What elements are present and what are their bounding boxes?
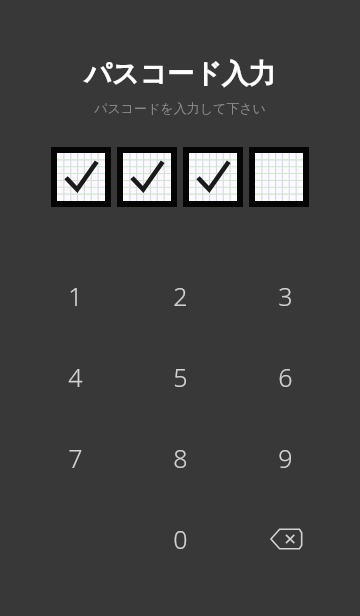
button[interactable]: 9 — [233, 417, 338, 498]
button[interactable]: 3 — [233, 255, 338, 336]
button[interactable]: 6 — [233, 336, 338, 417]
staticText: 5 — [173, 360, 188, 394]
button[interactable]: 2 — [128, 255, 233, 336]
button[interactable]: 0 — [128, 498, 233, 579]
button[interactable]: 4 — [22, 336, 128, 417]
button[interactable]: 1 — [22, 255, 128, 336]
button[interactable]: 5 — [128, 336, 233, 417]
button[interactable]: Backspace — [233, 498, 338, 579]
staticText: 3 — [278, 279, 293, 313]
staticText: パスコードを入力して下さい — [0, 100, 360, 116]
staticText: 7 — [68, 441, 83, 475]
staticText: 0 — [173, 522, 188, 556]
staticText: 1 — [68, 279, 83, 313]
button[interactable]: 8 — [128, 417, 233, 498]
staticText: 8 — [173, 441, 188, 475]
staticText: 6 — [278, 360, 293, 394]
staticText: 9 — [278, 441, 293, 475]
staticText: 4 — [68, 360, 83, 394]
staticText: パスコード入力 — [0, 57, 360, 91]
staticText: 2 — [173, 279, 188, 313]
button[interactable]: 7 — [22, 417, 128, 498]
